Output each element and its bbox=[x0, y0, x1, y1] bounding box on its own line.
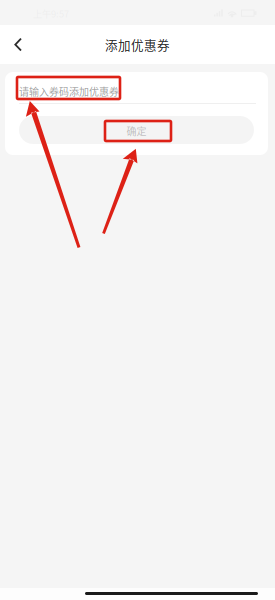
staticText: 请输入券码添加优惠券 bbox=[19, 84, 119, 99]
staticText: 添加优惠券 bbox=[105, 35, 170, 53]
button[interactable]: 返回 bbox=[0, 25, 34, 64]
button[interactable]: 确定 bbox=[19, 116, 254, 144]
staticText: 确定 bbox=[126, 124, 146, 138]
